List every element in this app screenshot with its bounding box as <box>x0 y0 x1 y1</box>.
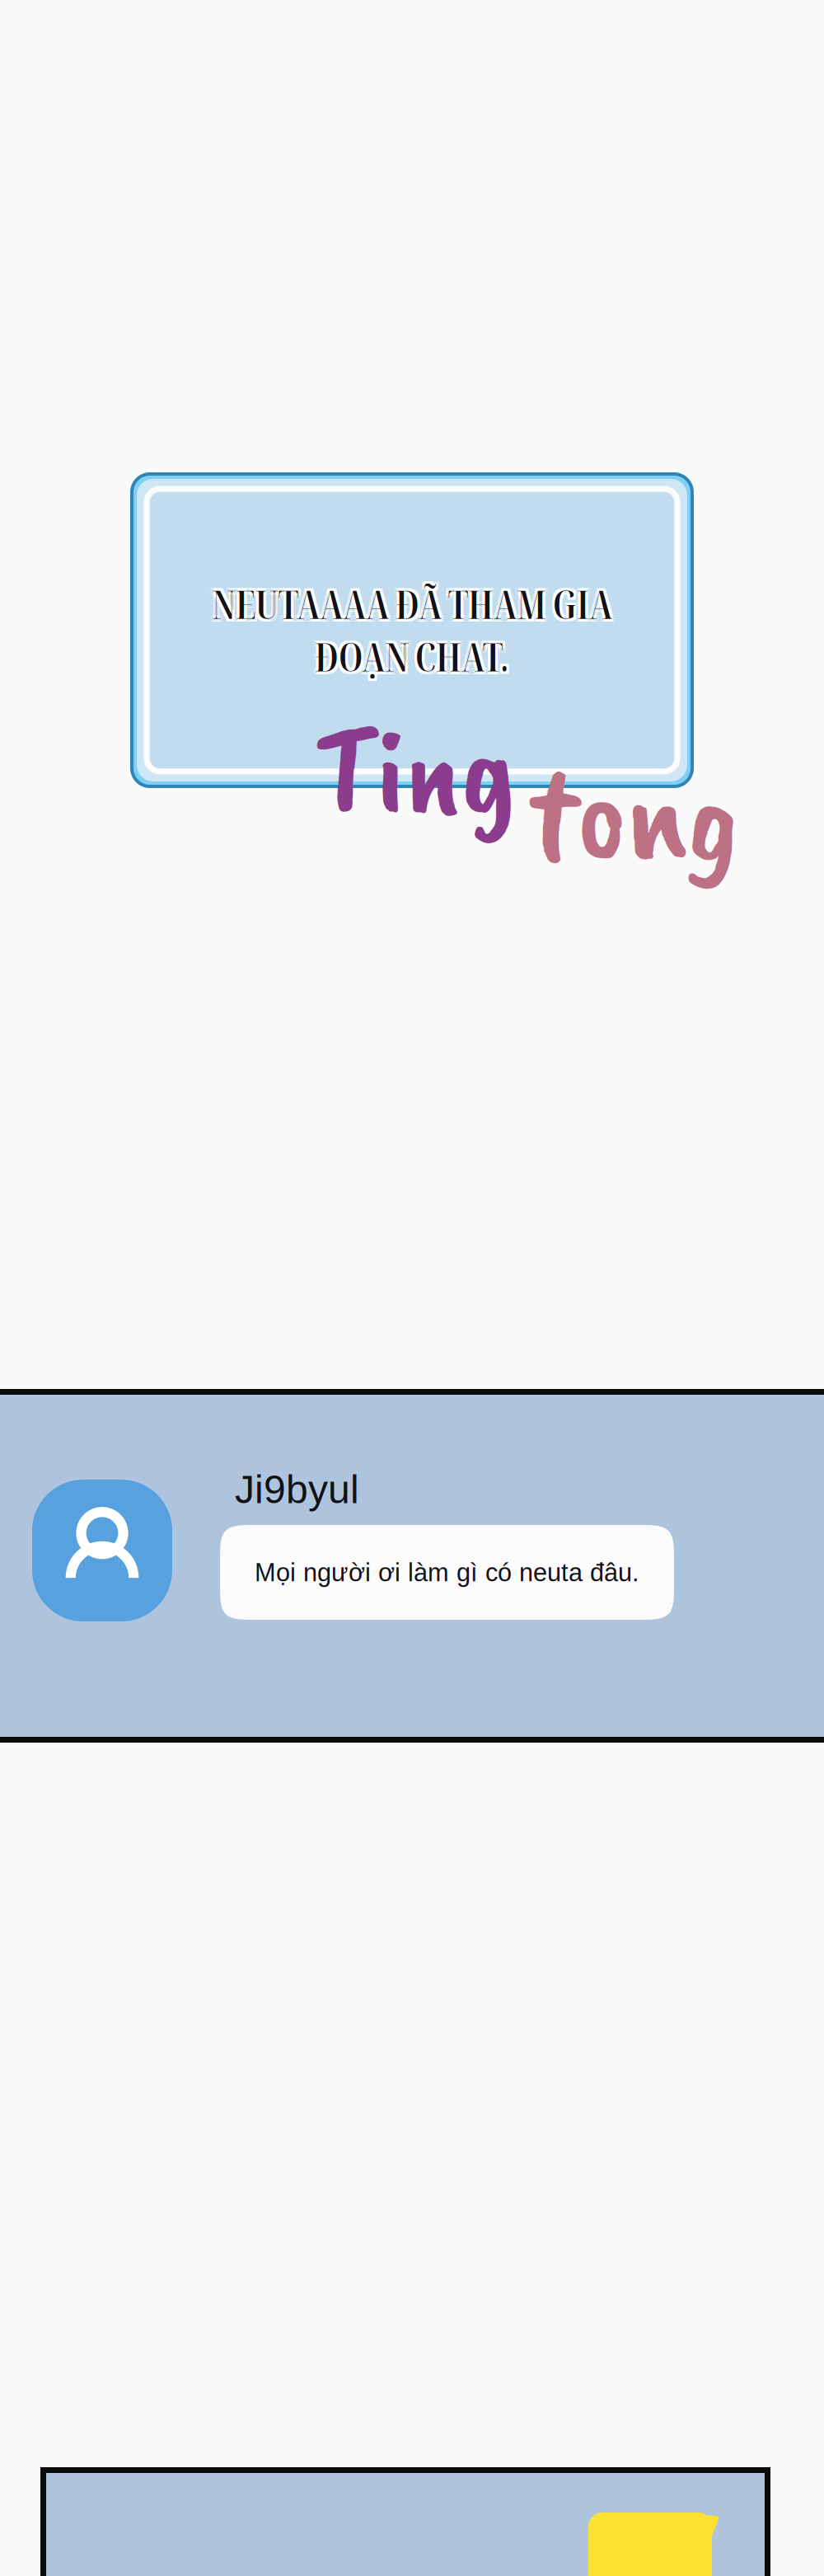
staticText: NEUTAAAA ĐÃ THAM GIA <box>209 575 610 628</box>
staticText: tong <box>529 730 739 899</box>
staticText: ĐOẠN CHAT. <box>315 633 509 685</box>
staticText: ĐOẠN CHAT. <box>312 633 507 685</box>
staticText: NEUTAAAA ĐÃ THAM GIA <box>214 580 615 633</box>
staticText: ĐOẠN CHAT. <box>312 628 507 680</box>
staticText: NEUTAAAA ĐÃ THAM GIA <box>214 575 615 628</box>
staticText: NEUTAAAA ĐÃ THAM GIA <box>214 578 615 630</box>
staticText: NEUTAAAA ĐÃ THAM GIA <box>212 580 612 633</box>
staticText: ĐOẠN CHAT. <box>317 630 512 683</box>
staticText: ĐOẠN CHAT. <box>317 628 512 680</box>
staticText: Ting <box>315 690 518 851</box>
staticText: NEUTAAAA ĐÃ THAM GIA <box>209 580 610 633</box>
staticText: ĐOẠN CHAT. <box>317 633 512 685</box>
staticText: NEUTAAAA ĐÃ THAM GIA <box>209 578 610 630</box>
staticText: NEUTAAAA ĐÃ THAM GIA <box>212 578 612 630</box>
staticText: ĐOẠN CHAT. <box>312 630 507 683</box>
staticText: NEUTAAAA ĐÃ THAM GIA <box>212 575 612 628</box>
staticText: ĐOẠN CHAT. <box>315 630 509 683</box>
button[interactable]: Ji9byul profile picture <box>32 1480 172 1621</box>
staticText: ĐOẠN CHAT. <box>315 628 509 680</box>
staticText: Ji9byul <box>235 1467 359 1511</box>
staticText: Mọi người ơi làm gì có neuta đâu. <box>255 1558 639 1587</box>
